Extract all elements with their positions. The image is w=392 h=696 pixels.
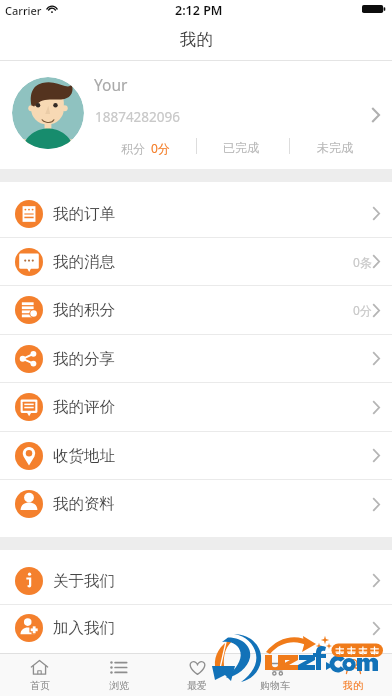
button[interactable]: Reviews xyxy=(0,383,392,431)
button[interactable]: 浏览 xyxy=(79,654,158,696)
button[interactable]: 购物车 xyxy=(236,654,314,696)
button[interactable]: Orders xyxy=(0,190,392,237)
button[interactable]: About us xyxy=(0,557,392,604)
button[interactable]: Address xyxy=(0,432,392,479)
staticText: 2:12 PM xyxy=(175,2,223,19)
staticText: 已完成 xyxy=(223,140,259,155)
button[interactable]: 首页 xyxy=(0,654,79,696)
staticText: 购物车 xyxy=(260,679,290,692)
staticText: Your xyxy=(94,74,128,95)
staticText: 最爱 xyxy=(187,679,207,692)
button[interactable]: 我的 xyxy=(314,654,392,696)
other: Share xyxy=(15,345,43,373)
button[interactable]: Messages xyxy=(0,238,392,285)
button[interactable]: 最爱 xyxy=(158,654,236,696)
staticText: 收货地址 xyxy=(53,446,115,466)
button[interactable]: Your xyxy=(0,61,392,169)
other: Points xyxy=(15,296,43,324)
other: About us xyxy=(15,567,43,595)
other: Messages xyxy=(15,248,43,276)
staticText: 首页 xyxy=(30,679,50,692)
button[interactable]: Share xyxy=(0,335,392,382)
other: Address xyxy=(15,442,43,470)
staticText: 我的 xyxy=(343,679,363,692)
staticText: 加入我们 xyxy=(53,618,115,638)
staticText: 我的积分 xyxy=(53,300,115,320)
staticText: 我的订单 xyxy=(53,204,115,224)
staticText: 浏览 xyxy=(109,679,129,692)
staticText: Carrier xyxy=(5,3,42,18)
staticText: 我的分享 xyxy=(53,349,115,369)
staticText: 0分 xyxy=(353,302,372,318)
staticText: 未完成 xyxy=(317,140,353,155)
other: Orders xyxy=(15,200,43,228)
staticText: 关于我们 xyxy=(53,571,115,591)
button[interactable]: Profile xyxy=(0,480,392,528)
staticText: 18874282096 xyxy=(95,108,180,126)
staticText: 我的评价 xyxy=(53,397,115,417)
staticText: 积分 xyxy=(121,141,145,156)
staticText: 0条 xyxy=(353,254,372,270)
button[interactable]: Join us xyxy=(0,605,392,651)
staticText: 我的消息 xyxy=(53,252,115,272)
staticText: 0分 xyxy=(151,140,170,156)
other: Join us xyxy=(15,614,43,642)
staticText: 我的 xyxy=(180,29,213,50)
other: Profile xyxy=(15,490,43,518)
staticText: 我的资料 xyxy=(53,494,115,514)
button[interactable]: Points xyxy=(0,286,392,334)
other: Reviews xyxy=(15,393,43,421)
